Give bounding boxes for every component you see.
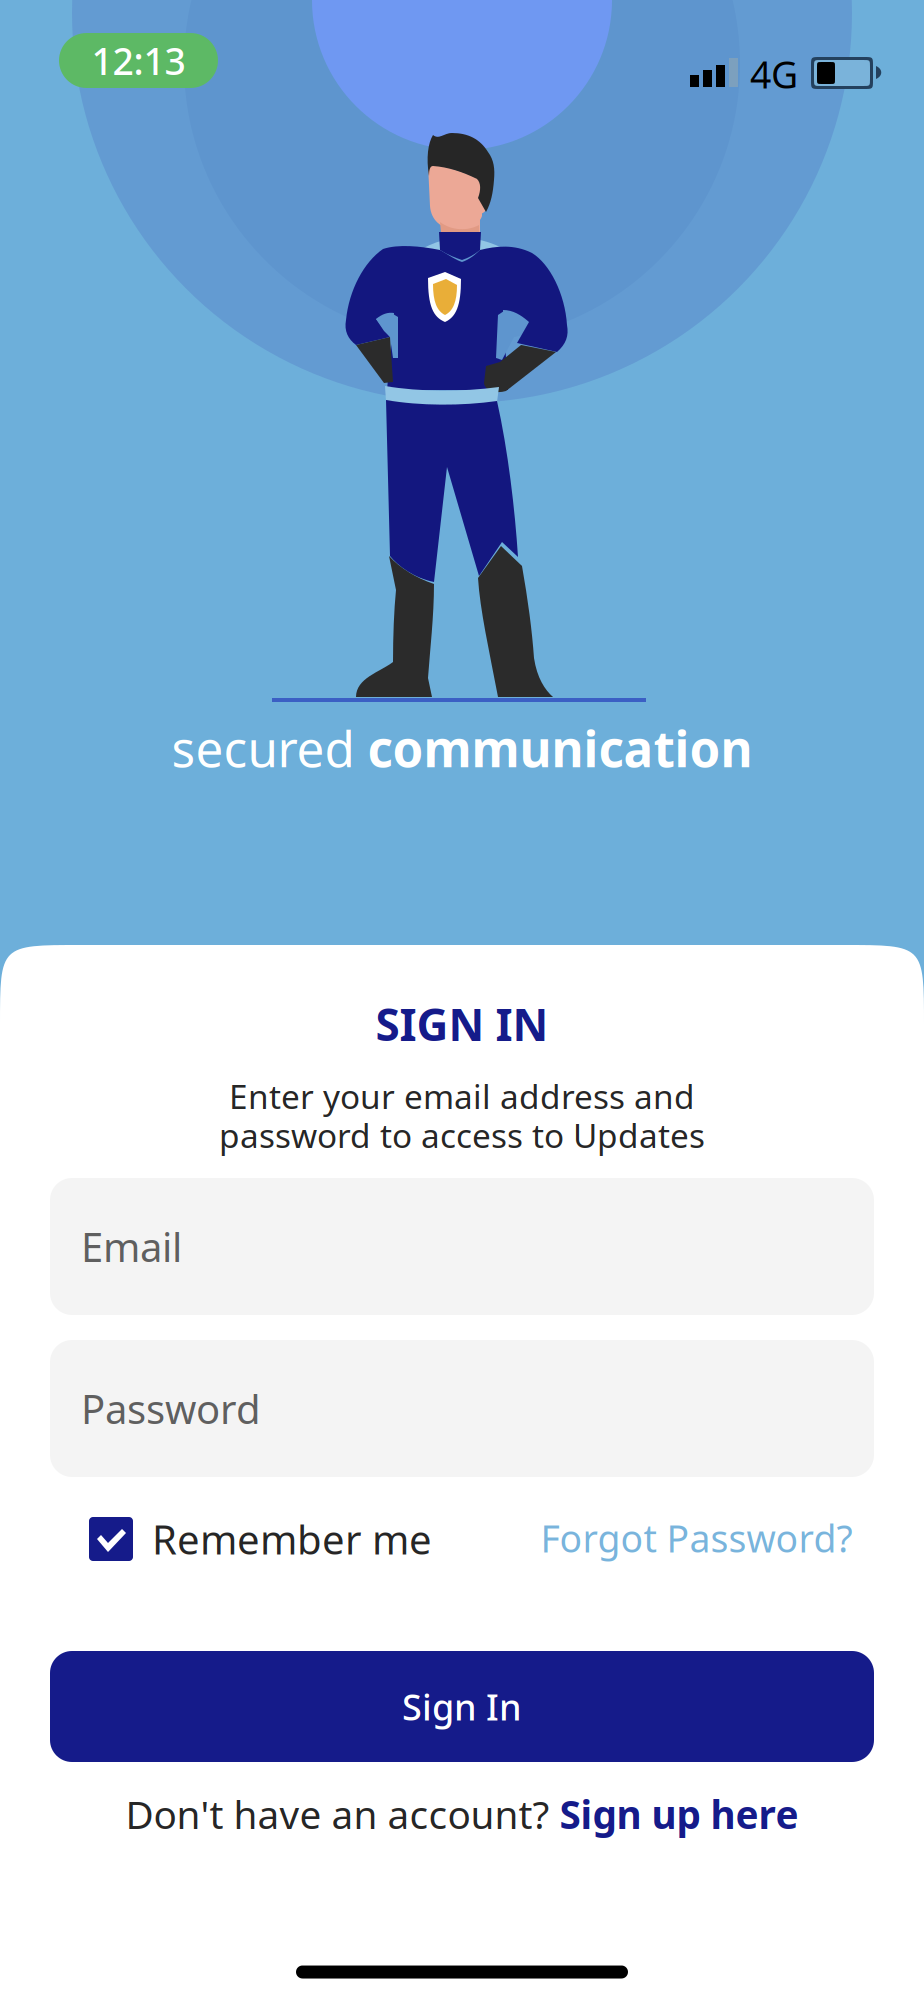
button[interactable]: Email — [50, 1178, 874, 1315]
staticText: secured — [171, 715, 367, 781]
staticText: Remember me — [152, 1512, 432, 1565]
staticText: Sign up here — [559, 1788, 798, 1840]
button[interactable]: Sign In — [50, 1651, 874, 1762]
staticText: Enter your email address and — [229, 1074, 695, 1118]
staticText: SIGN IN — [375, 995, 548, 1053]
staticText: Forgot Password? — [540, 1513, 852, 1563]
staticText: Password — [81, 1382, 261, 1435]
button[interactable]: Forgot Password? — [540, 1513, 852, 1563]
button[interactable]: Sign up here — [559, 1788, 798, 1840]
staticText: password to access to Updates — [219, 1113, 705, 1157]
staticText: communication — [367, 715, 752, 781]
staticText: Sign In — [402, 1683, 522, 1730]
staticText: Don't have an account? — [125, 1788, 559, 1840]
button[interactable]: Remember me — [89, 1514, 432, 1564]
staticText: Email — [81, 1220, 182, 1273]
button[interactable]: Password — [50, 1340, 874, 1477]
staticText: 4G — [750, 49, 798, 99]
staticText: 12:13 — [91, 36, 185, 85]
